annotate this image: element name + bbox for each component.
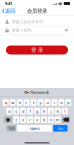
staticText: l (64, 108, 65, 114)
button[interactable]: z (13, 116, 19, 123)
staticText: space (30, 126, 40, 131)
staticText: y (39, 100, 41, 105)
button[interactable]: d (20, 108, 26, 114)
staticText: s (15, 108, 17, 114)
staticText: a (8, 108, 10, 114)
staticText: o (60, 100, 62, 105)
button[interactable]: b (41, 116, 47, 123)
button[interactable]: o (58, 99, 64, 106)
staticText: 请输入密码 (11, 28, 31, 33)
button[interactable]: r (24, 99, 29, 106)
button[interactable]: j (48, 108, 54, 114)
button[interactable]: w (10, 99, 16, 106)
button[interactable]: g (34, 108, 40, 114)
staticText: 返回 (5, 8, 15, 14)
button[interactable]: 登 录 (6, 45, 68, 54)
button[interactable]: a (6, 108, 12, 114)
staticText: m (56, 117, 60, 122)
staticText: 会员登录 (27, 8, 47, 14)
button[interactable]: t (31, 99, 36, 106)
staticText: j (50, 108, 51, 114)
staticText: k (57, 108, 59, 114)
button[interactable]: k (55, 108, 61, 114)
staticText: t (33, 100, 34, 105)
button[interactable]: i (51, 99, 57, 106)
button[interactable]: Shift (4, 116, 12, 123)
staticText: 登 录 (31, 47, 43, 53)
staticText: d (22, 108, 24, 114)
button[interactable]: q (3, 99, 9, 106)
button[interactable]: s (13, 108, 19, 114)
button[interactable]: h (41, 108, 47, 114)
staticText: v (36, 117, 38, 122)
staticText: w (11, 100, 14, 105)
staticText: p (67, 100, 69, 105)
button[interactable]: Passwords (23, 88, 51, 96)
staticText: x (22, 117, 24, 122)
button[interactable]: v (34, 116, 40, 123)
staticText: q (5, 100, 7, 105)
button[interactable]: Delete (62, 116, 70, 123)
button[interactable]: 返回 (0, 7, 17, 15)
button[interactable]: l (62, 108, 68, 114)
button[interactable]: y (37, 99, 43, 106)
button[interactable]: n (48, 116, 54, 123)
button[interactable]: u (44, 99, 50, 106)
staticText: g (36, 108, 38, 114)
staticText: h (43, 108, 45, 114)
staticText: u (46, 100, 48, 105)
staticText: i (54, 100, 55, 105)
button[interactable]: f (27, 108, 33, 114)
staticText: n (50, 117, 52, 122)
button[interactable]: p (65, 99, 71, 106)
staticText: 请输入您的手机号 (11, 19, 43, 24)
staticText: e (19, 100, 21, 105)
staticText: r (26, 100, 28, 105)
button[interactable]: Show password (64, 27, 69, 34)
staticText: 123 (8, 126, 14, 131)
staticText: b (43, 117, 45, 122)
staticText: Go (58, 126, 63, 131)
button[interactable]: c (27, 116, 33, 123)
button[interactable]: e (17, 99, 23, 106)
staticText: f (30, 108, 31, 114)
button[interactable]: x (20, 116, 26, 123)
staticText: c (29, 117, 31, 122)
staticText: 9:41 (5, 1, 12, 6)
button[interactable]: 123 (6, 125, 16, 132)
button[interactable]: space (17, 125, 52, 132)
button[interactable]: m (55, 116, 61, 123)
button[interactable]: Go (53, 125, 67, 132)
staticText: Passwords (30, 90, 49, 95)
staticText: z (15, 117, 17, 122)
